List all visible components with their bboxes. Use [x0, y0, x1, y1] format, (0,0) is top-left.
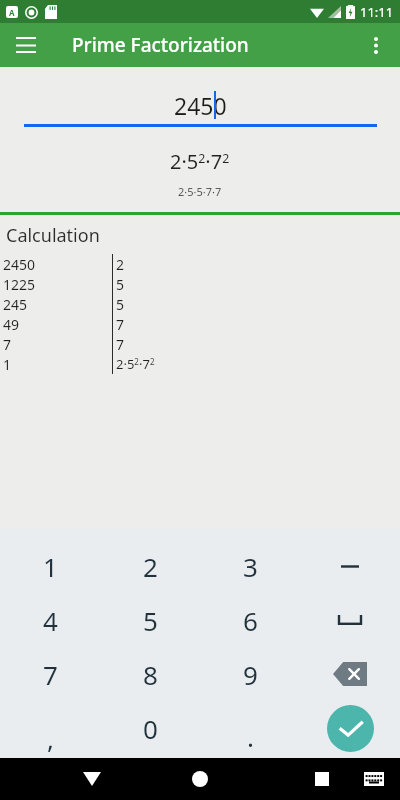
staticText: 3 [243, 549, 258, 584]
button[interactable]: 6 [200, 593, 300, 647]
staticText: 2450 [174, 90, 227, 121]
button[interactable]: Back [70, 758, 114, 800]
staticText: 5 [116, 295, 125, 314]
button[interactable]: Backspace [300, 647, 400, 701]
staticText: 7 [43, 657, 58, 692]
button[interactable]: Recent apps [300, 758, 344, 800]
button[interactable]: 2 [100, 539, 200, 593]
staticText: 6 [243, 603, 258, 638]
button[interactable]: Open navigation menu [6, 25, 46, 65]
staticText: 2450 [3, 255, 36, 274]
button[interactable]: Home [178, 758, 222, 800]
staticText: . [247, 719, 254, 754]
staticText: A [9, 7, 15, 18]
staticText: 1 [43, 549, 58, 584]
staticText: 7 [116, 335, 125, 354]
button[interactable]: Switch keyboard [354, 759, 394, 799]
staticText: 1225 [3, 275, 36, 294]
button[interactable]: Minus [300, 539, 400, 593]
staticText: 2 [116, 255, 125, 274]
staticText: 5 [143, 603, 158, 638]
staticText: 2·52·72 [170, 148, 230, 175]
staticText: 5 [116, 275, 125, 294]
staticText: 11:11 [360, 3, 394, 21]
staticText: 245 [3, 295, 28, 314]
button[interactable]: 3 [200, 539, 300, 593]
staticText: , [47, 721, 54, 756]
button[interactable]: Done [300, 701, 400, 755]
button[interactable]: 9 [200, 647, 300, 701]
staticText: Calculation [6, 223, 100, 248]
staticText: 4 [43, 603, 58, 638]
staticText: 0 [143, 711, 158, 746]
button[interactable]: Comma [0, 701, 100, 755]
button[interactable]: 7 [0, 647, 100, 701]
staticText: 7 [116, 315, 125, 334]
staticText: Prime Factorization [72, 32, 249, 58]
button[interactable]: Decimal point [200, 701, 300, 755]
staticText: 49 [3, 315, 20, 334]
staticText: 9 [243, 657, 258, 692]
staticText: 1 [3, 355, 12, 374]
staticText: 7 [3, 335, 12, 354]
button[interactable]: Space [300, 593, 400, 647]
staticText: 8 [143, 657, 158, 692]
button[interactable]: 4 [0, 593, 100, 647]
button[interactable]: 1 [0, 539, 100, 593]
button[interactable]: 5 [100, 593, 200, 647]
button[interactable]: 0 [100, 701, 200, 755]
button[interactable]: More options [356, 25, 396, 65]
button[interactable]: 8 [100, 647, 200, 701]
staticText: 2·5·5·7·7 [178, 184, 222, 199]
staticText: 2·52·72 [116, 355, 155, 373]
staticText: 2 [143, 549, 158, 584]
